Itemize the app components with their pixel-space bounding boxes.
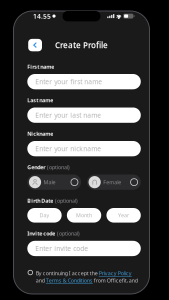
staticText: 14.55 (33, 12, 51, 21)
staticText: Invite code (27, 230, 55, 237)
button[interactable]: Enter your first name (27, 74, 141, 89)
staticText: and (36, 277, 46, 284)
button[interactable]: Enter your last name (27, 107, 141, 123)
staticText: Enter your first name (35, 77, 102, 86)
button[interactable]: Enter invite code (27, 241, 141, 256)
staticText: Female (103, 179, 121, 186)
staticText: Enter your nickname (35, 144, 101, 153)
button[interactable]: Back (28, 39, 42, 51)
staticText: Privacy Policy (99, 270, 132, 277)
staticText: Nickname (27, 130, 53, 137)
staticText: from Officefit, and (93, 277, 138, 284)
staticText: Birth Date (27, 197, 53, 204)
staticText: (optional) (57, 230, 80, 237)
staticText: Gender (27, 164, 45, 171)
staticText: Last name (27, 97, 53, 104)
button[interactable]: Day (27, 208, 62, 223)
staticText: Enter invite code (35, 244, 88, 253)
staticText: Month (76, 212, 92, 219)
staticText: Year (118, 212, 129, 219)
button[interactable]: Male (27, 174, 81, 190)
staticText: Day (39, 212, 49, 219)
button[interactable]: Female (87, 174, 141, 190)
button[interactable]: Year (106, 208, 141, 223)
staticText: Male (43, 179, 55, 186)
staticText: By continuing I accept the (36, 270, 99, 277)
staticText: (optional) (55, 197, 78, 204)
button[interactable]: Month (67, 208, 101, 223)
staticText: First name (27, 63, 54, 70)
button[interactable]: Accept terms and conditions (28, 270, 33, 275)
staticText: Terms & Conditions (46, 277, 93, 284)
staticText: Create Profile (55, 40, 108, 50)
staticText: (optional) (47, 164, 70, 171)
button[interactable]: Enter your nickname (27, 141, 141, 156)
staticText: Enter your last name (35, 111, 101, 120)
